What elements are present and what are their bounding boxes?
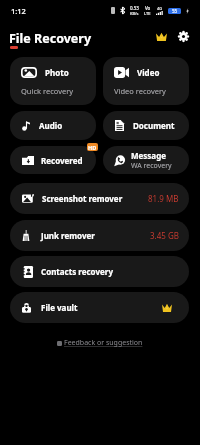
staticText: 55 [172,8,178,14]
staticText: Video [137,67,160,78]
staticText: Message [131,150,166,161]
staticText: Screenshot remover [42,193,123,204]
button[interactable]: Photo [10,57,96,105]
button[interactable]: File vault [10,292,189,323]
staticText: Recovered [41,155,83,166]
button[interactable]: Recovered [10,146,96,174]
button[interactable]: Junk remover [10,220,189,251]
staticText: Feedback or suggestion [64,338,143,348]
button[interactable]: Audio [10,111,96,140]
button[interactable]: Document [103,111,189,140]
staticText: HD [88,144,97,151]
button[interactable]: Video [103,57,189,105]
staticText: Video recovery [114,86,166,96]
staticText: KB/s [130,11,139,16]
button[interactable]: Premium [151,26,171,46]
staticText: Vo [145,5,151,11]
staticText: Photo [45,67,69,78]
staticText: Contacts recovery [41,266,113,277]
staticText: WA recovery [131,161,172,171]
staticText: Quick recovery [21,86,74,96]
staticText: File Recovery [9,30,92,47]
staticText: Audio [39,120,63,131]
staticText: 81.9 MB [148,193,179,204]
staticText: Junk remover [41,230,95,241]
staticText: 3.45 GB [150,230,179,241]
button[interactable]: Feedback or suggestion [0,338,200,348]
button[interactable]: Settings [173,26,193,46]
staticText: Document [133,120,175,131]
staticText: 4G [157,6,163,11]
button[interactable]: Message [103,146,189,174]
button[interactable]: Contacts recovery [10,256,189,287]
staticText: File vault [41,302,78,313]
staticText: 0.53 [130,5,139,11]
staticText: 1:12 [11,6,26,16]
staticText: LTE [144,11,151,16]
button[interactable]: Screenshot remover [10,183,189,214]
